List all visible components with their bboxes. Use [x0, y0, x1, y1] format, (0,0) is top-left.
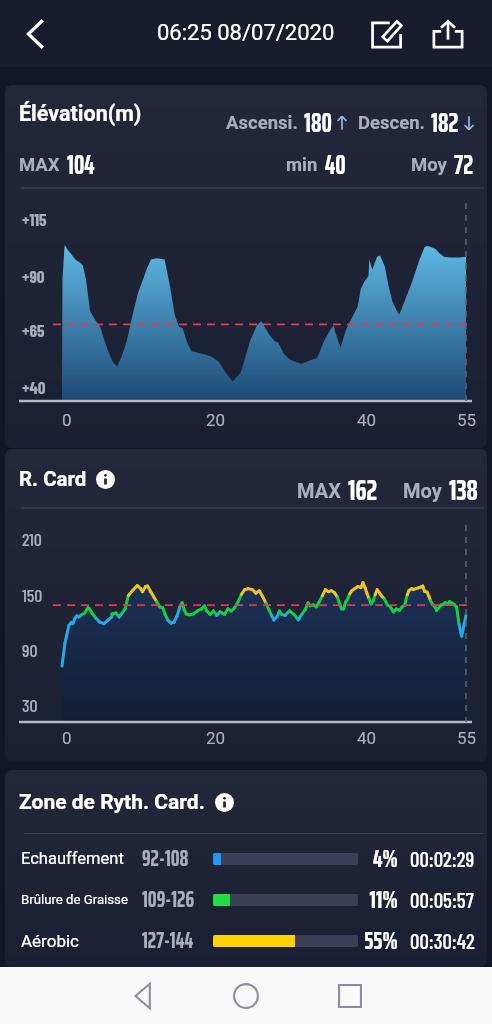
staticText: 210 — [22, 528, 42, 550]
button[interactable]: Back — [118, 972, 166, 1020]
button[interactable]: Brûlure de Graisse — [5, 879, 487, 920]
button[interactable]: Aérobic — [5, 920, 487, 961]
button[interactable]: Recents — [326, 972, 374, 1020]
staticText: Aérobic — [21, 931, 79, 951]
staticText: 182 — [431, 102, 459, 143]
staticText: Ascensi. — [226, 112, 298, 134]
staticText: 00:30:42 — [410, 928, 475, 953]
staticText: 40 — [325, 144, 346, 185]
staticText: min — [286, 154, 318, 176]
staticText: 72 — [454, 144, 473, 185]
staticText: Moy — [403, 479, 442, 502]
button[interactable]: Home — [222, 972, 270, 1020]
staticText: 109-126 — [142, 882, 195, 917]
staticText: Echauffement — [21, 849, 124, 868]
staticText: MAX — [19, 154, 60, 176]
staticText: 138 — [449, 468, 478, 512]
staticText: 104 — [67, 144, 95, 185]
staticText: Moy — [411, 154, 447, 176]
staticText: 55% — [362, 922, 398, 960]
staticText: 90 — [22, 639, 38, 661]
staticText: 150 — [22, 584, 43, 606]
staticText: 06:25 08/07/2020 — [157, 20, 335, 46]
staticText: R. Card — [19, 467, 87, 491]
staticText: 55 — [457, 728, 477, 748]
staticText: 4% — [362, 840, 398, 878]
staticText: 40 — [357, 410, 377, 430]
staticText: 00:02:29 — [410, 846, 475, 871]
staticText: +65 — [22, 320, 45, 340]
staticText: 40 — [357, 728, 377, 748]
staticText: Descen. — [358, 112, 425, 134]
staticText: Zone de Ryth. Card. — [19, 790, 205, 815]
staticText: 0 — [62, 410, 72, 430]
staticText: 11% — [362, 881, 398, 919]
staticText: +40 — [22, 377, 46, 397]
button[interactable]: Share — [424, 10, 472, 58]
staticText: 180 — [304, 102, 332, 143]
staticText: 20 — [206, 410, 226, 430]
button[interactable]: Back — [11, 10, 59, 58]
staticText: Brûlure de Graisse — [21, 892, 128, 907]
button[interactable]: Echauffement — [5, 838, 487, 879]
staticText: 162 — [348, 468, 378, 512]
staticText: 92-108 — [142, 841, 189, 876]
button[interactable]: Edit — [363, 10, 411, 58]
staticText: 127-144 — [142, 923, 194, 958]
staticText: +115 — [22, 209, 47, 229]
staticText: 20 — [206, 728, 226, 748]
staticText: MAX — [297, 479, 341, 502]
staticText: 55 — [457, 410, 477, 430]
staticText: +90 — [22, 266, 45, 286]
staticText: 0 — [62, 728, 72, 748]
staticText: 00:05:57 — [410, 887, 474, 912]
staticText: 30 — [22, 694, 38, 716]
staticText: Élévation(m) — [19, 101, 142, 126]
